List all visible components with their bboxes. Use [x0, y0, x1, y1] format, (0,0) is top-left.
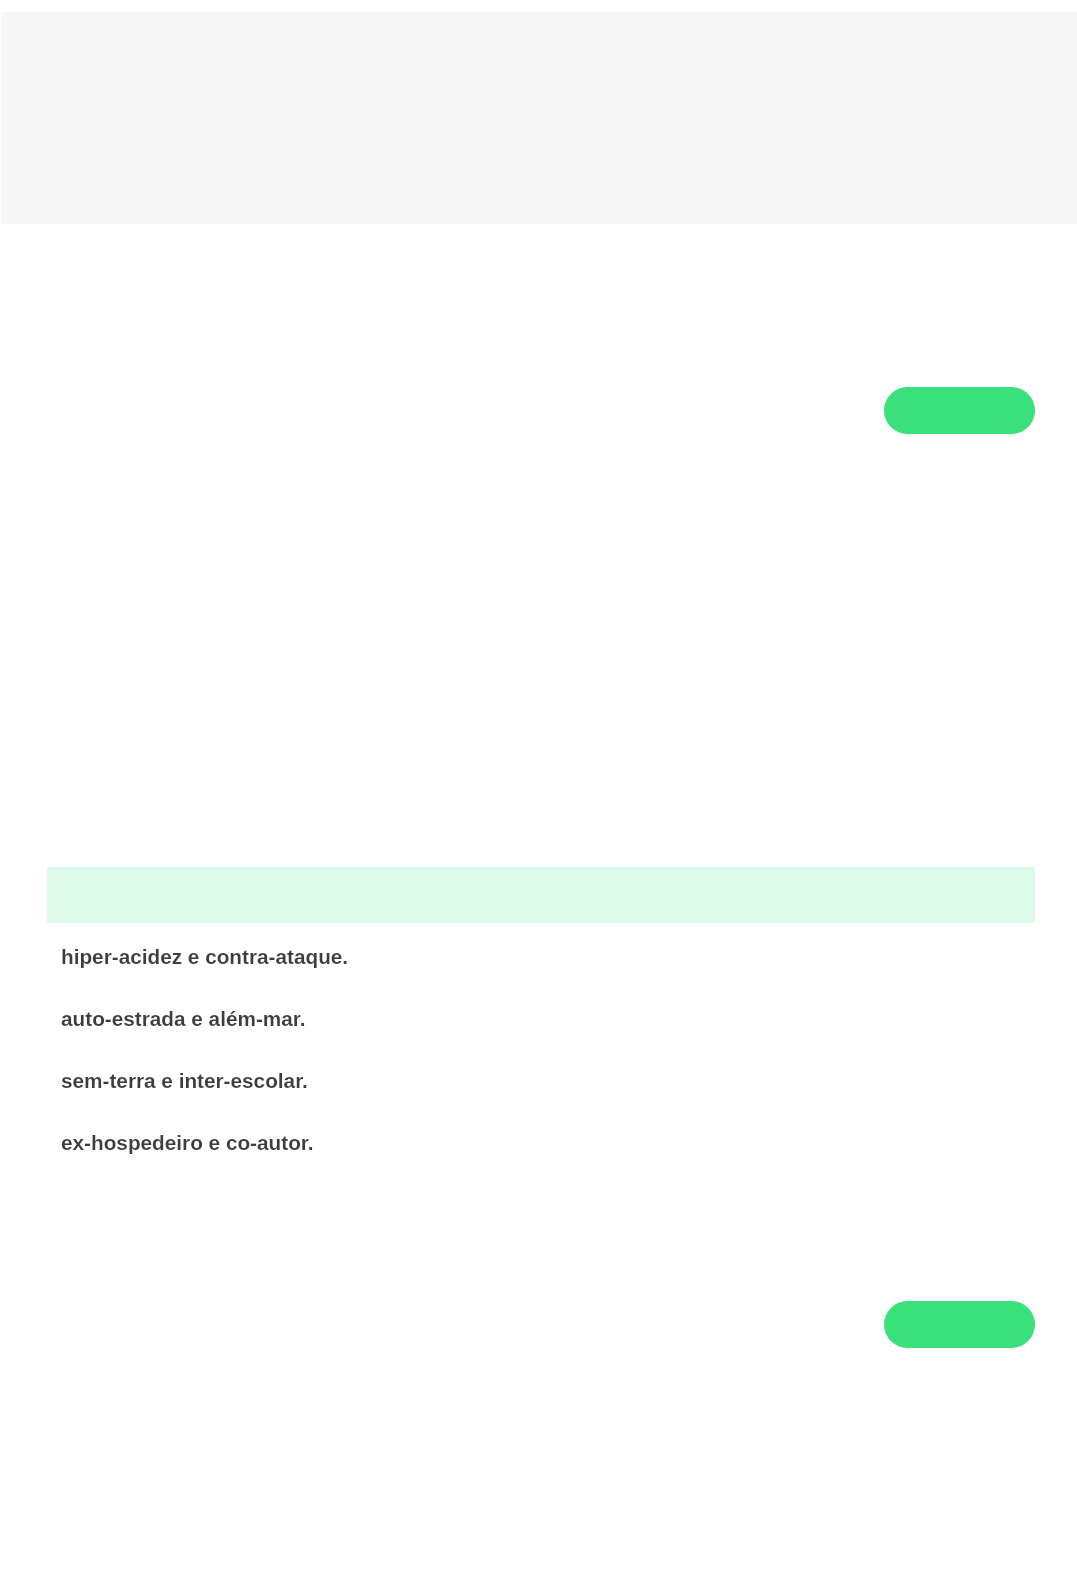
button[interactable]: Secondary action [884, 1301, 1035, 1348]
button[interactable]: hiper-acidez e contra-ataque. [61, 945, 761, 989]
staticText: ex-hospedeiro e co-autor. [61, 1131, 314, 1154]
button[interactable]: Primary action [884, 387, 1035, 434]
button[interactable]: auto-estrada e além-mar. [61, 1007, 761, 1051]
button[interactable]: ex-hospedeiro e co-autor. [61, 1131, 761, 1175]
staticText: hiper-acidez e contra-ataque. [61, 945, 349, 968]
button[interactable]: sem-terra e inter-escolar. [61, 1069, 761, 1113]
staticText: auto-estrada e além-mar. [61, 1007, 306, 1030]
staticText: sem-terra e inter-escolar. [61, 1069, 308, 1092]
